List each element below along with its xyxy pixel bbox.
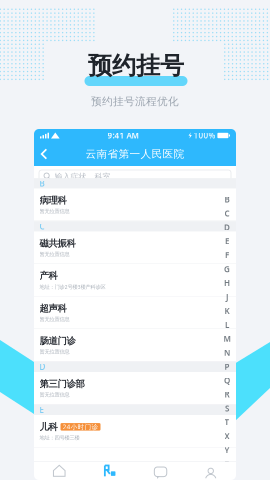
button[interactable]: 就医	[84, 464, 135, 477]
staticText: F	[225, 250, 229, 260]
staticText: 地址：四号楼三楼	[39, 435, 79, 441]
button[interactable]: 耳鼻咽喉科	[34, 448, 236, 480]
button[interactable]: 肠道门诊	[34, 329, 236, 362]
staticText: 第三门诊部	[39, 378, 84, 390]
button[interactable]: 产科	[34, 264, 236, 297]
staticText: 预约挂号	[88, 51, 184, 80]
staticText: E	[225, 236, 229, 246]
staticText: 磁共振科	[39, 238, 75, 249]
button[interactable]: 输入症状、科室	[39, 170, 231, 183]
button[interactable]: 消息	[135, 464, 185, 477]
staticText: 耳鼻咽喉科	[39, 454, 84, 465]
button[interactable]: 返回	[34, 143, 54, 165]
staticText: 儿科	[39, 421, 57, 433]
staticText: G	[224, 264, 230, 274]
button[interactable]: 首页	[34, 464, 84, 477]
staticText: K	[224, 306, 229, 316]
staticText: J	[226, 292, 228, 302]
staticText: 暂无位置信息	[39, 251, 69, 258]
staticText: 100%	[193, 130, 215, 141]
staticText: 暂无位置信息	[39, 392, 69, 398]
button[interactable]: 超声科	[34, 297, 236, 329]
staticText: 预约挂号流程优化	[91, 95, 179, 108]
button[interactable]: 我的	[185, 464, 236, 477]
staticText: T	[224, 417, 229, 427]
staticText: H	[224, 278, 230, 288]
staticText: 9:41 AM	[107, 130, 138, 141]
staticText: 暂无位置信息	[39, 349, 69, 355]
staticText: D	[39, 362, 45, 372]
button[interactable]: 儿科	[34, 415, 236, 448]
staticText: 地址：门诊2号楼3楼产科诊区	[39, 283, 105, 290]
staticText: 暂无位置信息	[39, 208, 69, 215]
button[interactable]: 磁共振科	[34, 232, 236, 264]
staticText: E	[39, 405, 43, 415]
staticText: 输入症状、科室	[54, 172, 110, 181]
staticText: D	[224, 222, 230, 233]
staticText: B	[224, 194, 229, 205]
staticText: 产科	[39, 270, 57, 281]
staticText: 暂无位置信息	[39, 467, 69, 474]
staticText: C	[224, 208, 229, 219]
staticText: Z	[224, 459, 229, 469]
staticText: B	[39, 178, 44, 189]
staticText: 肠道门诊	[39, 335, 75, 347]
staticText: Q	[224, 375, 230, 386]
staticText: C	[39, 221, 44, 232]
staticText: R	[224, 389, 229, 400]
staticText: N	[224, 347, 230, 358]
staticText: 病理科	[39, 195, 66, 206]
staticText: Y	[224, 445, 229, 455]
staticText: M	[223, 333, 230, 344]
button[interactable]: 病理科	[34, 189, 236, 221]
staticText: 24小时门诊	[62, 422, 98, 431]
staticText: 云南省第一人民医院	[85, 147, 184, 160]
staticText: L	[225, 319, 229, 330]
staticText: X	[224, 431, 229, 441]
staticText: 超声科	[39, 303, 66, 314]
staticText: P	[224, 361, 229, 372]
button[interactable]: 第三门诊部	[34, 372, 236, 405]
staticText: 暂无位置信息	[39, 316, 69, 323]
staticText: S	[225, 403, 229, 414]
